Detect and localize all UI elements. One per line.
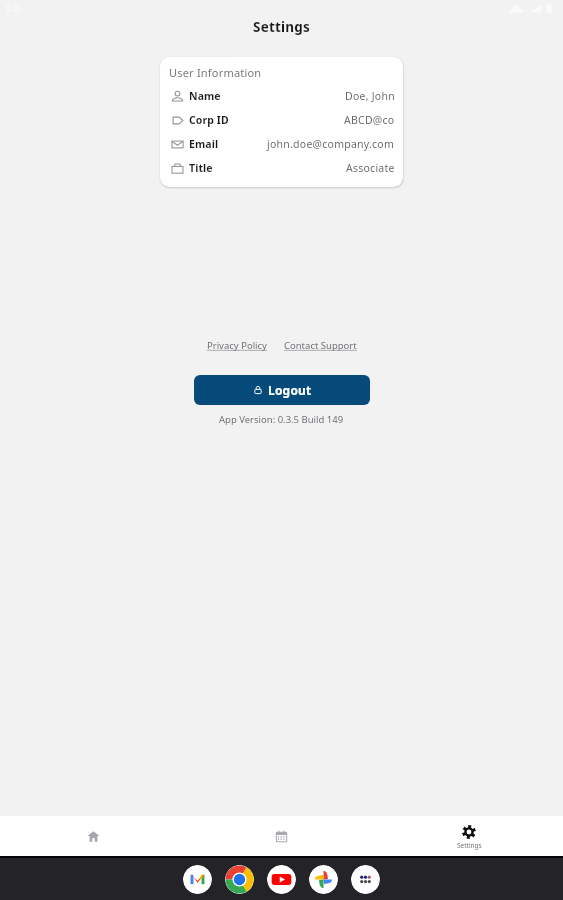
staticText: Settings bbox=[253, 18, 310, 36]
staticText: Associate bbox=[346, 161, 395, 175]
staticText: ABCD@co bbox=[344, 113, 395, 127]
button[interactable]: Home bbox=[0, 816, 187, 857]
staticText: Privacy Policy bbox=[207, 339, 267, 351]
staticText: User Information bbox=[169, 65, 262, 80]
button[interactable]: Title bbox=[160, 156, 403, 180]
staticText: Corp ID bbox=[189, 113, 229, 127]
staticText: Doe, John bbox=[345, 89, 395, 103]
button[interactable]: Corp ID bbox=[160, 108, 403, 132]
staticText: Name bbox=[189, 89, 221, 103]
button[interactable]: Gmail bbox=[183, 865, 212, 894]
button[interactable]: Calendar bbox=[187, 816, 375, 857]
staticText: App Version: 0.3.5 Build 149 bbox=[219, 413, 344, 426]
staticText: Logout bbox=[268, 382, 312, 398]
button[interactable]: Email bbox=[160, 132, 403, 156]
staticText: Title bbox=[189, 161, 213, 175]
button[interactable]: Logout bbox=[194, 375, 370, 405]
staticText: Settings bbox=[457, 841, 482, 850]
staticText: Contact Support bbox=[284, 339, 357, 351]
button[interactable]: Settings bbox=[375, 816, 563, 857]
staticText: Email bbox=[189, 137, 219, 151]
staticText: john.doe@company.com bbox=[267, 137, 395, 151]
button[interactable]: Privacy Policy bbox=[204, 336, 270, 354]
button[interactable]: Photos bbox=[309, 865, 338, 894]
button[interactable]: All apps bbox=[351, 865, 380, 894]
button[interactable]: Chrome bbox=[225, 865, 254, 894]
button[interactable]: Contact Support bbox=[281, 336, 360, 354]
button[interactable]: Name bbox=[160, 84, 403, 108]
button[interactable]: YouTube bbox=[267, 865, 296, 894]
